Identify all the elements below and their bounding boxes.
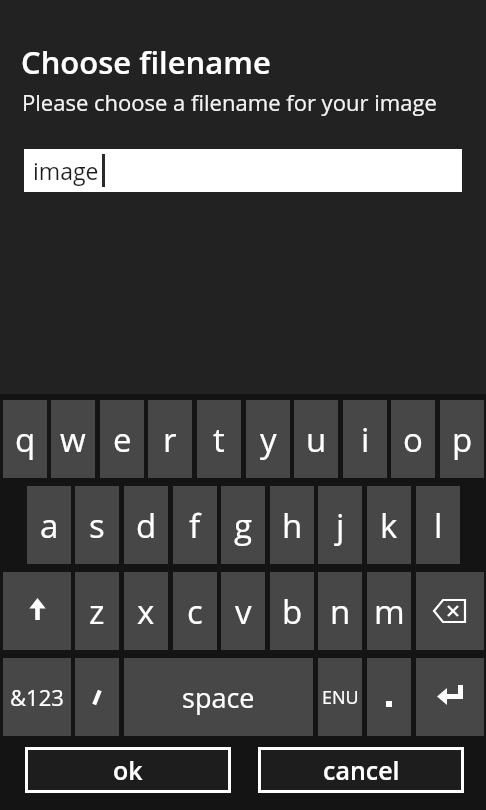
button[interactable]: p xyxy=(440,400,484,478)
button[interactable]: i xyxy=(343,400,387,478)
button[interactable]: c xyxy=(173,572,217,650)
staticText: v xyxy=(235,589,252,634)
button[interactable]: t xyxy=(197,400,241,478)
button[interactable] xyxy=(3,572,71,650)
button[interactable]: w xyxy=(51,400,95,478)
staticText: &123 xyxy=(10,682,64,712)
staticText: Please choose a filename for your image xyxy=(22,87,437,117)
button[interactable]: a xyxy=(27,486,71,564)
button[interactable]: ok xyxy=(25,747,231,793)
button[interactable]: v xyxy=(221,572,265,650)
button[interactable]: s xyxy=(75,486,119,564)
staticText: r xyxy=(163,417,177,462)
staticText: k xyxy=(380,503,398,548)
staticText: space xyxy=(182,679,255,716)
staticText: m xyxy=(374,589,405,634)
staticText: u xyxy=(306,417,327,462)
staticText: b xyxy=(282,589,303,634)
button[interactable]: h xyxy=(270,486,314,564)
staticText: x xyxy=(137,589,155,634)
button[interactable]: &123 xyxy=(3,658,71,736)
button[interactable]: j xyxy=(318,486,362,564)
staticText: j xyxy=(336,503,345,548)
button[interactable]: y xyxy=(246,400,290,478)
staticText: l xyxy=(434,503,443,548)
staticText: e xyxy=(113,417,132,462)
staticText: z xyxy=(89,589,105,634)
button[interactable]: n xyxy=(318,572,362,650)
button[interactable]: m xyxy=(367,572,411,650)
staticText: p xyxy=(452,417,473,462)
button[interactable]: x xyxy=(124,572,168,650)
button[interactable] xyxy=(367,658,411,736)
staticText: f xyxy=(189,503,201,548)
button[interactable]: space xyxy=(124,658,313,736)
button[interactable] xyxy=(416,658,484,736)
staticText: ok xyxy=(113,753,143,787)
button[interactable]: r xyxy=(148,400,192,478)
staticText: n xyxy=(330,589,351,634)
button[interactable] xyxy=(416,572,484,650)
button[interactable]: ENU xyxy=(318,658,362,736)
button[interactable]: u xyxy=(294,400,338,478)
staticText: g xyxy=(234,503,253,548)
staticText: s xyxy=(89,503,105,548)
button[interactable]: f xyxy=(173,486,217,564)
staticText: w xyxy=(60,417,86,462)
button[interactable]: q xyxy=(3,400,47,478)
button[interactable]: b xyxy=(270,572,314,650)
staticText: y xyxy=(260,417,277,462)
staticText: t xyxy=(213,417,225,462)
button[interactable]: l xyxy=(416,486,460,564)
button[interactable]: image xyxy=(24,149,462,192)
button[interactable]: d xyxy=(124,486,168,564)
staticText: d xyxy=(136,503,157,548)
button[interactable]: g xyxy=(221,486,265,564)
staticText: ENU xyxy=(322,685,359,710)
button[interactable]: k xyxy=(367,486,411,564)
button[interactable]: o xyxy=(391,400,435,478)
staticText: o xyxy=(403,417,423,462)
staticText: c xyxy=(187,589,203,634)
staticText: i xyxy=(361,417,370,462)
button[interactable]: cancel xyxy=(258,747,464,793)
button[interactable]: e xyxy=(100,400,144,478)
staticText: image xyxy=(33,155,99,186)
button[interactable] xyxy=(75,658,119,736)
staticText: q xyxy=(15,417,36,462)
staticText: cancel xyxy=(323,753,400,787)
staticText: a xyxy=(40,503,59,548)
button[interactable]: z xyxy=(75,572,119,650)
staticText: h xyxy=(282,503,303,548)
staticText: Choose filename xyxy=(21,41,271,83)
